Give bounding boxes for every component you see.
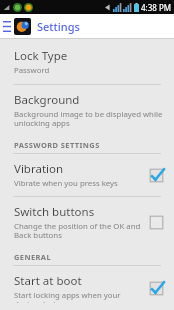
staticText: Background image to be displayed while u… bbox=[14, 109, 164, 129]
button[interactable]: Lock Type bbox=[0, 39, 174, 84]
staticText: PASSWORD SETTINGS bbox=[14, 140, 100, 150]
staticText: GENERAL bbox=[14, 252, 52, 262]
staticText: Vibration bbox=[14, 161, 64, 177]
button[interactable]: Up, Settings bbox=[0, 14, 174, 38]
staticText: 4:38 PM bbox=[141, 2, 172, 13]
staticText: Background bbox=[14, 92, 80, 108]
staticText: Password bbox=[14, 65, 50, 76]
staticText: Vibrate when you press keys bbox=[14, 178, 118, 189]
staticText: Start locking apps when your device star… bbox=[14, 290, 143, 303]
button[interactable]: Checked bbox=[149, 168, 164, 183]
button[interactable]: Start at boot bbox=[0, 266, 174, 310]
staticText: Lock Type bbox=[14, 48, 68, 64]
button[interactable]: Vibration bbox=[0, 154, 174, 196]
button[interactable]: Switch buttons bbox=[0, 197, 174, 248]
button[interactable]: Background bbox=[0, 85, 174, 136]
button[interactable]: Checked bbox=[149, 281, 164, 296]
staticText: Settings bbox=[37, 19, 80, 34]
button[interactable]: Unchecked bbox=[149, 215, 164, 230]
staticText: Switch buttons bbox=[14, 204, 95, 220]
staticText: Start at boot bbox=[14, 273, 82, 289]
staticText: Change the position of the OK and Back b… bbox=[14, 221, 143, 241]
